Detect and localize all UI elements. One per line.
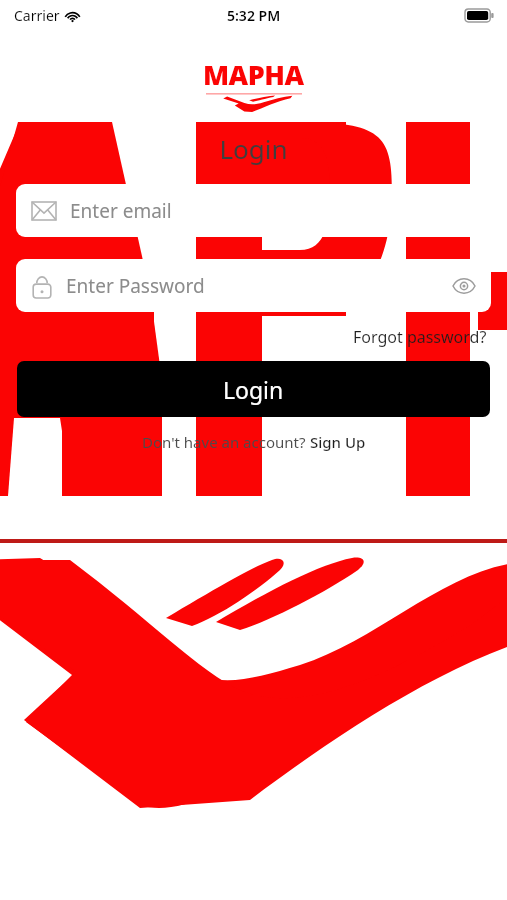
button[interactable]: Login (17, 361, 490, 417)
staticText: Sign Up (310, 432, 366, 452)
staticText: Login (0, 131, 507, 166)
button[interactable]: Forgot password? (351, 324, 489, 350)
staticText: Don't have an account? (142, 432, 310, 452)
other: Show password (453, 279, 475, 293)
staticText: Login (223, 374, 284, 405)
button[interactable]: Enter email (16, 184, 491, 237)
staticText: Enter email (70, 198, 475, 224)
staticText: MAPHA (203, 56, 304, 93)
staticText: 5:32 PM (227, 6, 281, 25)
button[interactable]: Enter Password (16, 259, 491, 312)
button[interactable]: Show password (453, 279, 475, 293)
button[interactable]: Sign Up (310, 432, 366, 452)
staticText: Forgot password? (353, 326, 487, 348)
staticText: Enter Password (66, 273, 453, 299)
staticText: Carrier (14, 6, 60, 25)
